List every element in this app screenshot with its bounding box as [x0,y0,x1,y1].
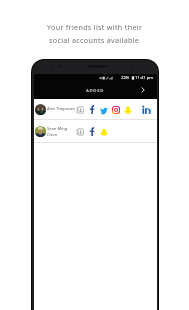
button[interactable]: fb [88,126,96,137]
button[interactable]: Sean Ming Chun [34,120,157,142]
button[interactable]: Next [139,86,147,94]
staticText: social accounts available [49,35,140,45]
staticText: Sean Ming Chun [47,126,68,137]
button[interactable]: contacts [76,104,84,115]
button[interactable]: tw [100,104,108,115]
button[interactable]: fb [88,104,96,115]
staticText: ADDED [86,87,105,93]
staticText: 11:41 pm [135,75,154,81]
button[interactable]: snap [124,104,132,115]
button[interactable]: Alex Tragiovan [34,99,157,119]
button[interactable]: snap [100,126,108,137]
button[interactable]: ADDED [34,82,157,99]
button[interactable]: contacts [76,126,84,137]
staticText: Alex Tragiovan [47,106,75,112]
staticText: 22% [121,75,130,81]
button[interactable]: ig [112,104,120,115]
staticText: Your friends list with their [47,22,143,32]
button[interactable]: li [141,104,153,115]
